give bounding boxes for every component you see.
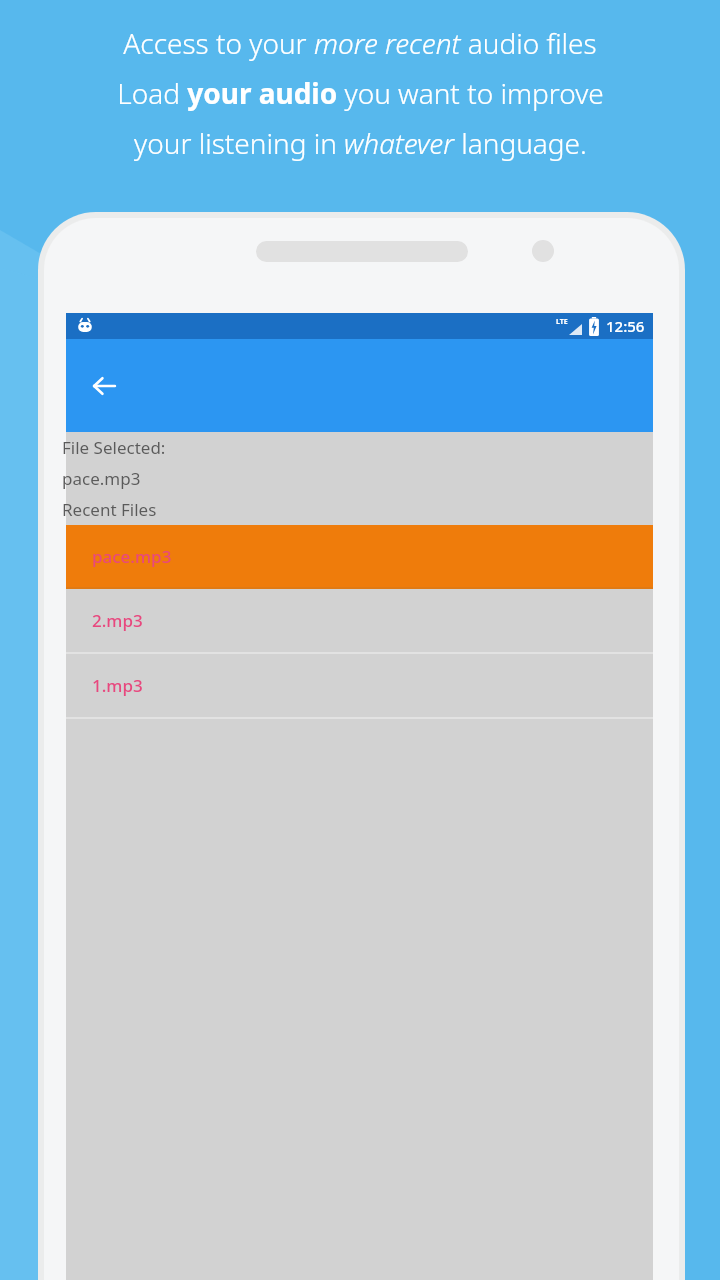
staticText: File Selected: [62,436,166,459]
staticText: Recent Files [62,498,157,521]
staticText: Access to your more recent audio files [123,24,597,62]
button[interactable]: 2.mp3 [66,589,653,654]
staticText: pace.mp3 [62,467,141,490]
staticText: 2.mp3 [92,609,143,632]
staticText: 1.mp3 [92,674,143,697]
button[interactable]: Back [80,362,128,410]
staticText: your listening in whatever language. [134,124,587,162]
staticText: LTE [556,317,568,327]
staticText: pace.mp3 [92,545,172,568]
staticText: 12:56 [606,316,645,336]
button[interactable]: pace.mp3 [66,525,653,589]
button[interactable]: 1.mp3 [66,654,653,719]
staticText: Load your audio you want to improve [117,74,604,112]
